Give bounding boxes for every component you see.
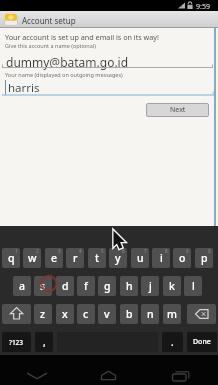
staticText: 5: [101, 248, 104, 254]
button[interactable]: n: [141, 304, 159, 324]
staticText: Account setup: [22, 15, 76, 26]
staticText: .: [171, 335, 174, 349]
staticText: 0: [208, 248, 211, 254]
staticText: dummy@batam.go.id: [6, 54, 129, 70]
staticText: Your account is set up and email is on i…: [5, 32, 159, 42]
staticText: ?123: [9, 338, 24, 347]
staticText: f: [84, 279, 88, 293]
button[interactable]: v: [98, 304, 116, 324]
button[interactable]: j: [141, 276, 159, 296]
staticText: o: [179, 251, 186, 265]
button[interactable]: [187, 304, 216, 324]
button[interactable]: d: [56, 276, 74, 296]
staticText: 3: [58, 248, 61, 254]
staticText: 7: [144, 248, 147, 254]
button[interactable]: f: [77, 276, 95, 296]
button[interactable]: o: [173, 248, 191, 268]
staticText: p: [201, 251, 208, 265]
staticText: u: [137, 251, 144, 265]
button[interactable]: w: [23, 248, 41, 268]
button[interactable]: g: [98, 276, 116, 296]
staticText: n: [147, 307, 154, 321]
staticText: q: [8, 251, 15, 265]
staticText: 6: [122, 248, 125, 254]
staticText: 9:59: [196, 2, 210, 12]
button[interactable]: y: [109, 248, 127, 268]
staticText: 4: [79, 248, 82, 254]
button[interactable]: r: [66, 248, 84, 268]
button[interactable]: Done: [187, 332, 217, 352]
staticText: r: [73, 251, 78, 265]
button[interactable]: h: [120, 276, 138, 296]
button[interactable]: i: [152, 248, 170, 268]
button[interactable]: l: [184, 276, 202, 296]
staticText: 1: [15, 248, 18, 254]
staticText: w: [28, 251, 37, 265]
staticText: 9: [186, 248, 189, 254]
button[interactable]: q: [2, 248, 20, 268]
staticText: v: [104, 307, 110, 321]
button[interactable]: ?123: [2, 332, 31, 352]
staticText: e: [51, 251, 58, 265]
button[interactable]: b: [120, 304, 138, 324]
staticText: 8: [165, 248, 168, 254]
staticText: y: [115, 251, 121, 265]
button[interactable]: c: [77, 304, 95, 324]
button[interactable]: s: [34, 276, 52, 296]
button[interactable]: m: [163, 304, 181, 324]
button[interactable]: ,: [35, 332, 53, 352]
button[interactable]: u: [131, 248, 149, 268]
staticText: m: [167, 307, 177, 321]
staticText: i: [160, 251, 163, 265]
button[interactable]: p: [195, 248, 213, 268]
button[interactable]: [2, 304, 31, 324]
staticText: harris: [8, 80, 40, 96]
staticText: h: [126, 279, 133, 293]
button[interactable]: t: [88, 248, 106, 268]
staticText: l: [192, 279, 195, 293]
staticText: Give this account a name (optional): [5, 42, 96, 49]
staticText: a: [19, 279, 26, 293]
staticText: ,: [43, 335, 46, 349]
button[interactable]: Next: [146, 103, 209, 117]
button[interactable]: x: [56, 304, 74, 324]
staticText: j: [149, 279, 152, 293]
staticText: t: [95, 251, 100, 265]
button[interactable]: a: [13, 276, 31, 296]
staticText: c: [83, 307, 89, 321]
button[interactable]: k: [163, 276, 181, 296]
staticText: s: [40, 279, 46, 293]
button[interactable]: .: [162, 332, 183, 352]
staticText: g: [104, 279, 111, 293]
staticText: z: [40, 307, 46, 321]
staticText: k: [169, 279, 175, 293]
staticText: Next: [170, 105, 186, 115]
button[interactable]: [0, 11, 218, 28]
staticText: 2: [36, 248, 39, 254]
staticText: x: [62, 307, 68, 321]
button[interactable]: e: [45, 248, 63, 268]
staticText: d: [62, 279, 69, 293]
staticText: Done: [193, 337, 211, 347]
button[interactable]: z: [34, 304, 52, 324]
staticText: b: [126, 307, 133, 321]
staticText: Your name (displayed on outgoing message…: [5, 71, 123, 78]
